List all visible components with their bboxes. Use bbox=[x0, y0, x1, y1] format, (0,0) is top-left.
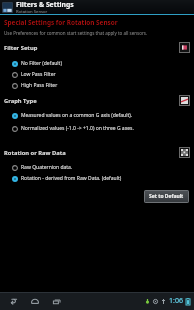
button[interactable]: Raw Quaternion data. bbox=[0, 162, 194, 173]
button[interactable]: Help for Filter Setup bbox=[179, 42, 190, 53]
staticText: Use Preferences for common start setting… bbox=[4, 30, 148, 36]
staticText: Rotation Sensor bbox=[16, 9, 48, 14]
button[interactable]: App icon bbox=[0, 0, 194, 14]
button[interactable]: High Pass Filter bbox=[0, 80, 194, 91]
staticText: Filters & Settings bbox=[16, 0, 74, 9]
staticText: Rotation or Raw Data bbox=[4, 149, 66, 157]
staticText: Set to Default bbox=[149, 193, 184, 200]
button[interactable]: Measured values on a common G axis (defa… bbox=[0, 110, 194, 121]
button[interactable]: Rotation - derived from Raw Data. (defau… bbox=[0, 173, 194, 184]
staticText: Graph Type bbox=[4, 97, 37, 105]
staticText: Filter Setup bbox=[4, 44, 38, 52]
staticText: 1:06 bbox=[169, 296, 183, 306]
button[interactable]: No Filter (default) bbox=[0, 58, 194, 69]
button[interactable]: Home bbox=[28, 294, 42, 308]
button[interactable]: Recent apps bbox=[50, 294, 64, 308]
staticText: Special Settings for Rotation Sensor bbox=[4, 18, 118, 27]
button[interactable]: Back bbox=[6, 294, 20, 308]
staticText: Raw Quaternion data. bbox=[21, 164, 73, 171]
staticText: Rotation - derived from Raw Data. (defau… bbox=[21, 175, 122, 182]
staticText: Low Pass Filter bbox=[21, 71, 56, 78]
button[interactable]: Set to Default bbox=[144, 190, 189, 203]
staticText: No Filter (default) bbox=[21, 60, 62, 67]
staticText: Normalized values (-1.0 -> +1.0) on thre… bbox=[21, 125, 134, 132]
other: App icon bbox=[2, 2, 13, 13]
button[interactable]: Help for Graph Type bbox=[179, 95, 190, 106]
button[interactable]: Normalized values (-1.0 -> +1.0) on thre… bbox=[0, 123, 194, 134]
staticText: High Pass Filter bbox=[21, 82, 58, 89]
button[interactable]: Help for Rotation or Raw Data bbox=[179, 147, 190, 158]
button[interactable]: Low Pass Filter bbox=[0, 69, 194, 80]
staticText: Measured values on a common G axis (defa… bbox=[21, 112, 133, 119]
